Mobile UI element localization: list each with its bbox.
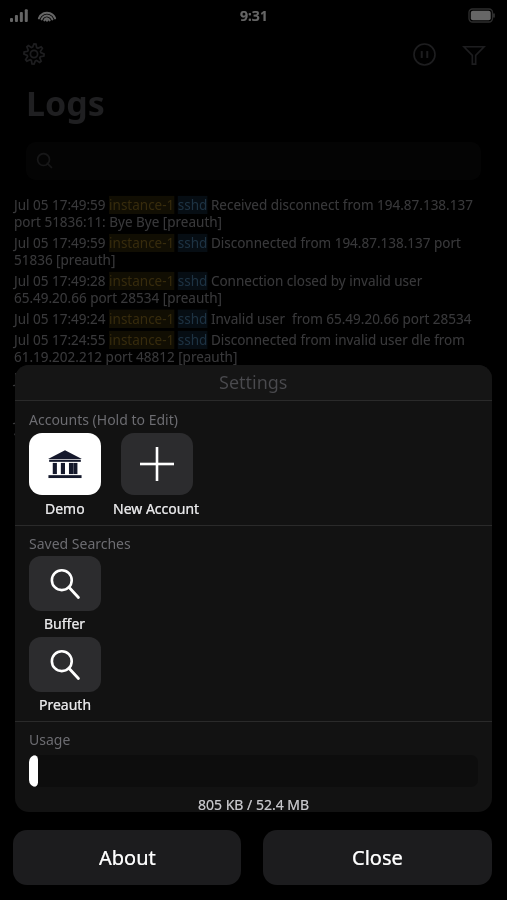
staticText: Preauth: [39, 695, 92, 714]
staticText: Usage: [29, 730, 71, 749]
staticText: Jul 05 17:49:28 instance-1 sshd Connecti…: [14, 272, 493, 307]
staticText: Logs: [26, 80, 105, 126]
button[interactable]: Demo: [29, 433, 101, 518]
staticText: Jul 05 17:24:34 instance-1 sshd Invalid …: [14, 407, 493, 442]
button[interactable]: Pause: [405, 35, 443, 73]
staticText: New Account: [113, 499, 200, 518]
staticText: Jul 05 17:49:24 instance-1 sshd Invalid …: [14, 310, 472, 328]
button[interactable]: About: [13, 830, 241, 885]
staticText: Saved Searches: [29, 534, 131, 553]
staticText: Close: [352, 844, 403, 871]
staticText: Buffer: [44, 614, 86, 633]
button[interactable]: Close: [263, 830, 492, 885]
button[interactable]: New Account: [113, 433, 200, 518]
staticText: Accounts (Hold to Edit): [29, 410, 178, 429]
button[interactable]: Filter: [455, 35, 493, 73]
staticText: Settings: [219, 370, 288, 395]
staticText: Jul 05 17:49:59 instance-1 sshd Received…: [14, 196, 493, 231]
staticText: Jul 05 17:24:55 instance-1 sshd Disconne…: [14, 331, 493, 366]
staticText: Demo: [45, 499, 85, 518]
staticText: 805 KB / 52.4 MB: [198, 795, 310, 812]
staticText: Jul 05 17:24:44 instance-1 sshd Received…: [14, 369, 493, 404]
button[interactable]: Preauth: [29, 637, 101, 714]
button[interactable]: Settings: [14, 34, 54, 74]
button[interactable]: Buffer: [29, 556, 101, 633]
staticText: 9:31: [240, 6, 268, 25]
staticText: Jul 05 17:49:59 instance-1 sshd Disconne…: [14, 234, 493, 269]
staticText: About: [99, 844, 156, 871]
